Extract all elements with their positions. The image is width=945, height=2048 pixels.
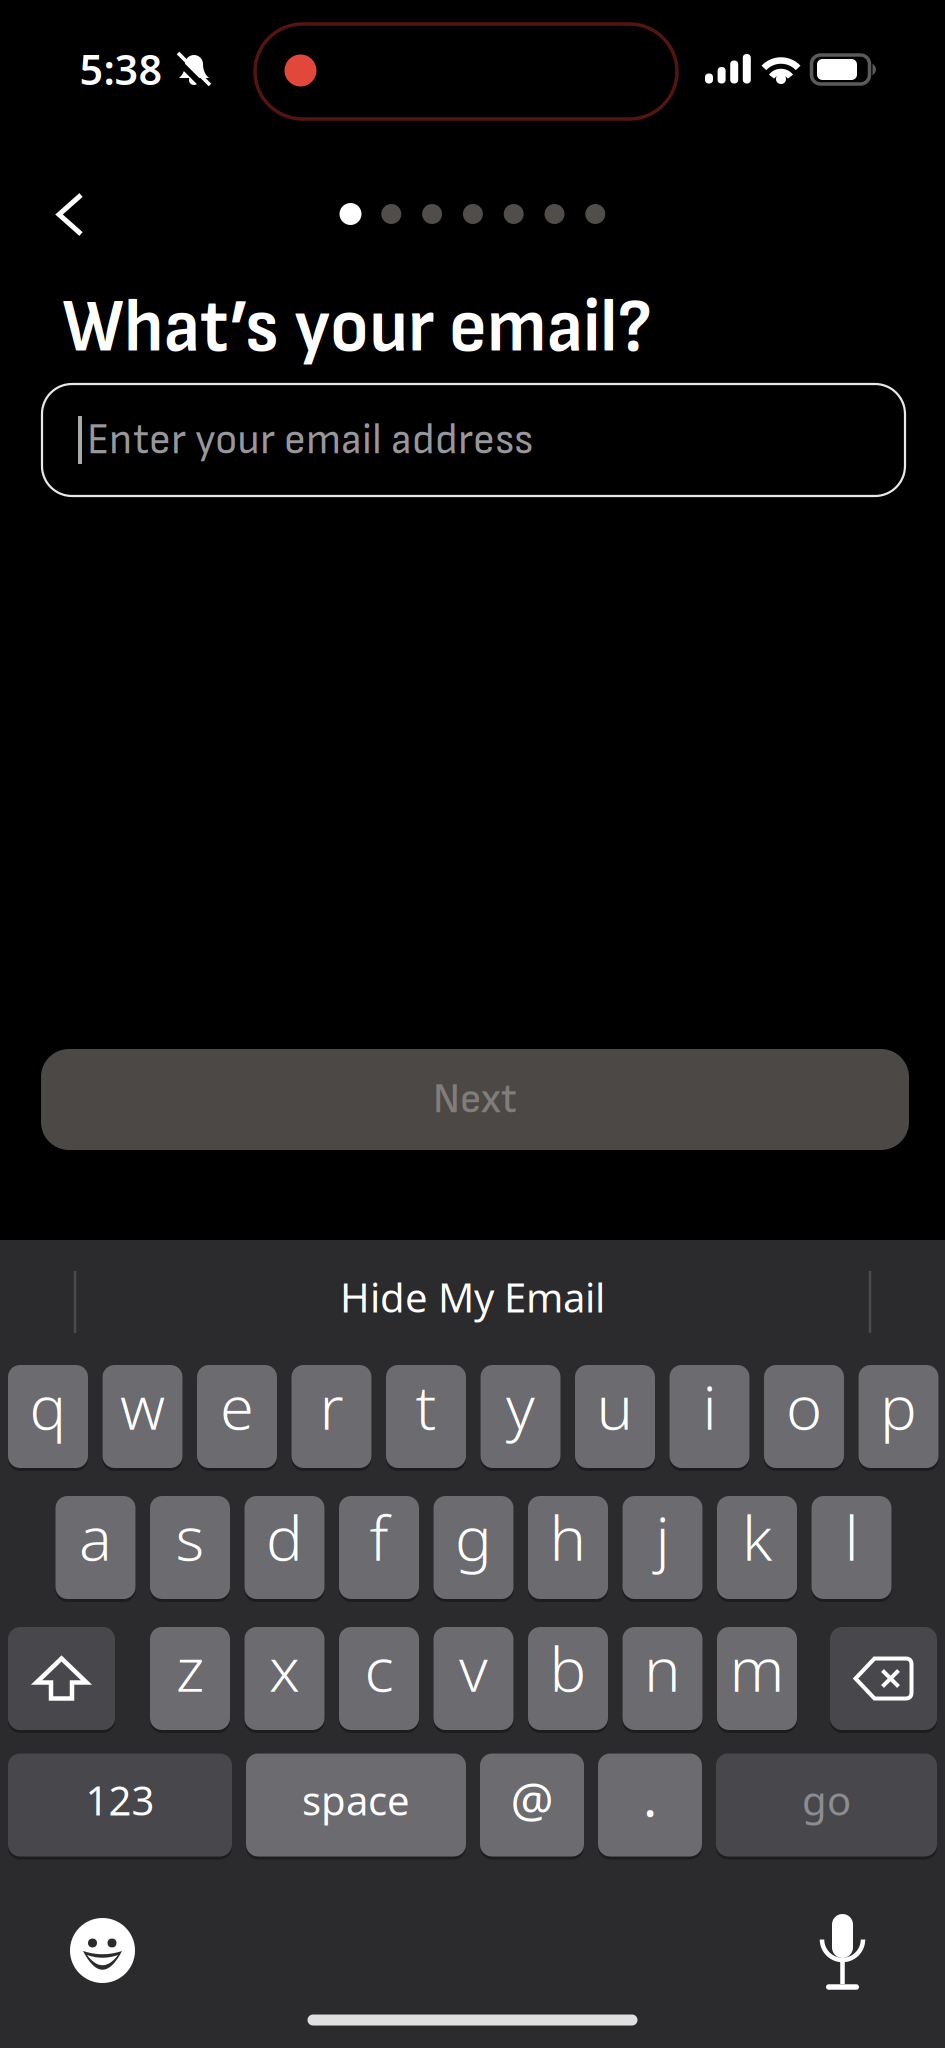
staticText: j xyxy=(655,1496,669,1578)
staticText: d xyxy=(266,1496,303,1578)
button[interactable]: d xyxy=(244,1494,324,1601)
button[interactable]: Next xyxy=(41,1049,909,1150)
button[interactable]: c xyxy=(339,1625,419,1732)
staticText: w xyxy=(120,1365,165,1447)
staticText: f xyxy=(369,1496,388,1578)
button[interactable]: go xyxy=(716,1751,937,1858)
button[interactable]: Shift xyxy=(8,1625,115,1732)
button[interactable]: o xyxy=(764,1363,844,1470)
button[interactable]: n xyxy=(622,1625,702,1732)
button[interactable]: m xyxy=(717,1625,797,1732)
staticText: p xyxy=(880,1365,917,1447)
staticText: Next xyxy=(433,1074,517,1125)
button[interactable]: @ xyxy=(480,1751,584,1858)
button[interactable]: w xyxy=(102,1363,182,1470)
button[interactable]: Enter your email address xyxy=(42,384,905,496)
button[interactable]: Emoji xyxy=(69,1917,135,1983)
button[interactable]: v xyxy=(433,1625,513,1732)
button[interactable]: x xyxy=(244,1625,324,1732)
staticText: a xyxy=(79,1496,112,1578)
button[interactable]: p xyxy=(858,1363,938,1470)
button[interactable]: u xyxy=(575,1363,655,1470)
button[interactable]: y xyxy=(480,1363,560,1470)
button[interactable]: i xyxy=(669,1363,749,1470)
button[interactable]: Hide My Email xyxy=(82,1237,862,1357)
button[interactable]: f xyxy=(339,1494,419,1601)
button[interactable]: s xyxy=(150,1494,230,1601)
staticText: r xyxy=(319,1365,343,1447)
button[interactable]: e xyxy=(197,1363,277,1470)
staticText: What’s your email? xyxy=(62,283,652,373)
staticText: space xyxy=(302,1773,410,1826)
staticText: y xyxy=(506,1365,535,1447)
button[interactable]: . xyxy=(598,1751,702,1858)
staticText: u xyxy=(596,1365,633,1447)
staticText: 5:38 xyxy=(79,42,162,96)
staticText: e xyxy=(220,1365,254,1447)
staticText: x xyxy=(269,1627,300,1709)
staticText: b xyxy=(549,1627,586,1709)
staticText: s xyxy=(175,1496,204,1578)
staticText: Enter your email address xyxy=(87,414,533,466)
staticText: c xyxy=(364,1627,393,1709)
staticText: l xyxy=(844,1496,858,1578)
staticText: i xyxy=(702,1365,716,1447)
staticText: o xyxy=(786,1365,822,1447)
button[interactable]: j xyxy=(622,1494,702,1601)
staticText: n xyxy=(644,1627,681,1709)
button[interactable]: h xyxy=(528,1494,608,1601)
button[interactable]: z xyxy=(150,1625,230,1732)
staticText: 123 xyxy=(85,1773,154,1826)
staticText: go xyxy=(802,1773,851,1826)
staticText: t xyxy=(415,1365,436,1447)
button[interactable]: q xyxy=(8,1363,88,1470)
button[interactable]: space xyxy=(246,1751,466,1858)
staticText: q xyxy=(29,1365,66,1447)
button[interactable]: a xyxy=(55,1494,135,1601)
staticText: z xyxy=(176,1627,204,1709)
button[interactable]: Dictation xyxy=(817,1914,867,1992)
button[interactable]: Delete xyxy=(830,1625,937,1732)
button[interactable]: Back xyxy=(57,193,85,237)
staticText: @ xyxy=(510,1767,553,1831)
button[interactable]: t xyxy=(386,1363,466,1470)
staticText: h xyxy=(549,1496,586,1578)
button[interactable]: g xyxy=(433,1494,513,1601)
staticText: . xyxy=(643,1761,657,1831)
staticText: v xyxy=(459,1627,488,1709)
button[interactable]: 123 xyxy=(8,1751,232,1858)
button[interactable]: r xyxy=(291,1363,371,1470)
button[interactable]: l xyxy=(811,1494,891,1601)
button[interactable]: b xyxy=(528,1625,608,1732)
staticText: m xyxy=(729,1627,784,1709)
staticText: g xyxy=(455,1496,492,1578)
staticText: Hide My Email xyxy=(340,1270,605,1323)
staticText: k xyxy=(742,1496,772,1578)
button[interactable]: k xyxy=(717,1494,797,1601)
